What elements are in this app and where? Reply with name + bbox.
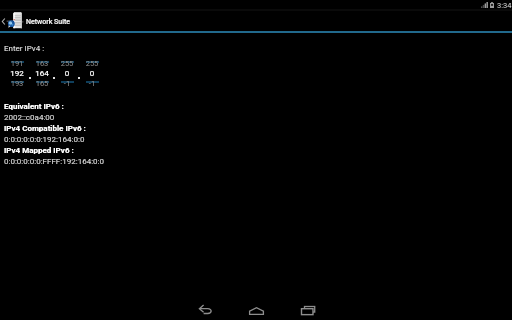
staticText: 191	[10, 59, 24, 68]
staticText: 0	[85, 69, 99, 78]
button[interactable]: Octet 192	[10, 57, 24, 88]
staticText: 192	[10, 69, 24, 78]
staticText: 0:0:0:0:0:0:FFFF:192:164:0:0	[4, 157, 105, 166]
staticText: 165	[35, 79, 49, 88]
staticText: Equivalent IPv6 :	[4, 102, 64, 111]
staticText: 164	[35, 69, 49, 78]
staticText: IPv4 Compatible IPv6 :	[4, 124, 86, 133]
button[interactable]: Network Suite, navigate up	[0, 11, 512, 31]
staticText: 255	[60, 59, 74, 68]
staticText: 0	[60, 69, 74, 78]
staticText: 0:0:0:0:0:0:192:164:0:0	[4, 135, 85, 144]
button[interactable]: Home	[230, 296, 282, 320]
staticText: -1	[85, 79, 99, 88]
staticText: IPv4 Mapped IPv6 :	[4, 146, 74, 155]
button[interactable]: Octet 0	[85, 57, 99, 88]
staticText: -1	[60, 79, 74, 88]
staticText: 2002::c0a4:00	[4, 113, 55, 122]
staticText: 255	[85, 59, 99, 68]
staticText: Network Suite	[26, 18, 71, 26]
button[interactable]: Back	[179, 296, 231, 320]
staticText: 163	[35, 59, 49, 68]
button[interactable]: Octet 0	[60, 57, 74, 88]
staticText: Enter IPv4 :	[4, 44, 45, 53]
button[interactable]: Recent apps	[282, 296, 334, 320]
button[interactable]: Octet 164	[35, 57, 49, 88]
staticText: 193	[10, 79, 24, 88]
staticText: 3:34	[497, 1, 512, 10]
